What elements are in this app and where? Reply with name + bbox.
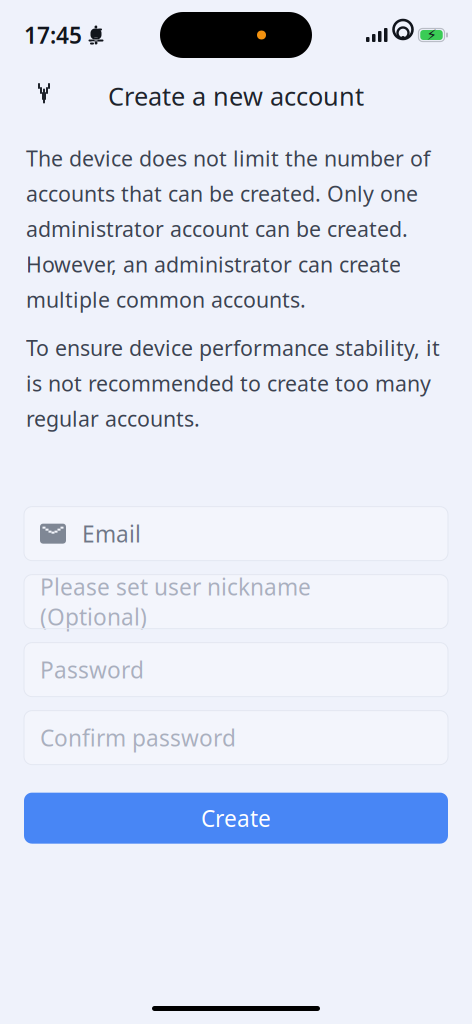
button[interactable]: Create <box>24 793 448 844</box>
staticText: 17:45 <box>24 20 82 50</box>
staticText: Create <box>201 803 271 833</box>
staticText: The device does not limit the number of … <box>26 144 430 314</box>
button[interactable]: Back <box>22 74 66 118</box>
staticText: To ensure device performance stability, … <box>26 334 440 433</box>
button[interactable]: Password <box>24 643 448 697</box>
button[interactable]: Email <box>24 507 448 561</box>
staticText: Email <box>82 519 141 549</box>
staticText: ⚡︎ <box>426 27 436 43</box>
button[interactable]: Confirm password <box>24 711 448 765</box>
staticText: Confirm password <box>40 723 236 753</box>
staticText: Please set user nickname (Optional) <box>40 571 311 632</box>
staticText: Create a new account <box>108 79 364 113</box>
button[interactable]: Please set user nickname (Optional) <box>24 575 448 629</box>
staticText: Password <box>40 655 144 685</box>
